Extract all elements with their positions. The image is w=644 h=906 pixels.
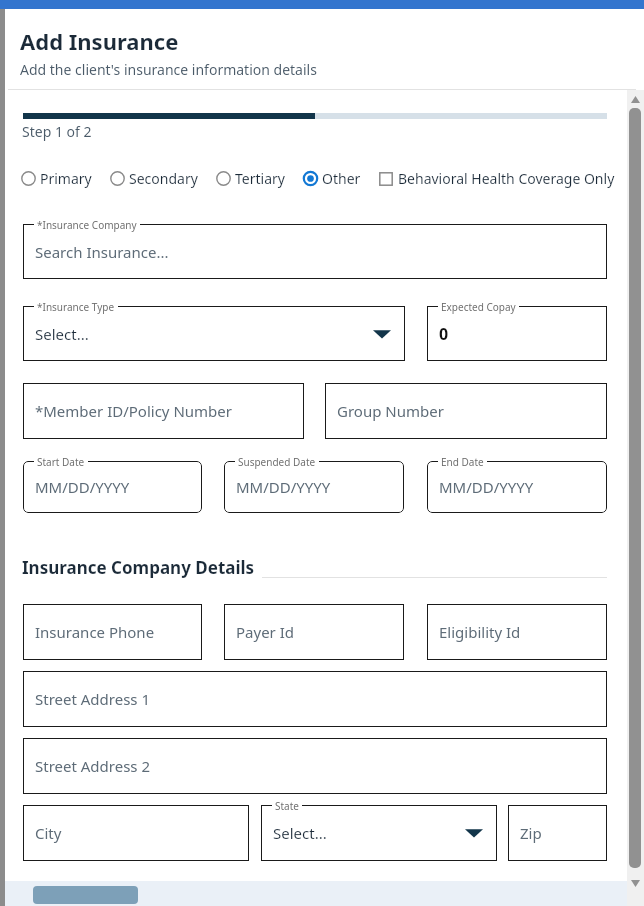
button[interactable] xyxy=(33,886,138,904)
staticText: Behavioral Health Coverage Only xyxy=(398,169,615,188)
staticText: Start Date xyxy=(37,455,85,469)
staticText: MM/DD/YYYY xyxy=(35,477,130,497)
button[interactable]: Tertiary xyxy=(216,169,285,188)
staticText: Search Insurance... xyxy=(35,242,169,262)
staticText: Insurance Phone xyxy=(35,622,155,642)
button[interactable]: Start Date xyxy=(23,461,202,513)
staticText: Tertiary xyxy=(235,169,285,188)
staticText: Expected Copay xyxy=(441,300,516,314)
staticText: *Insurance Company xyxy=(37,218,137,232)
button[interactable]: Insurance Phone xyxy=(23,604,202,660)
staticText: Group Number xyxy=(337,401,444,421)
staticText: Select... xyxy=(273,823,327,843)
button[interactable]: City xyxy=(23,805,249,861)
staticText: City xyxy=(35,823,62,843)
button[interactable]: Street Address 2 xyxy=(23,738,607,794)
button[interactable]: Street Address 1 xyxy=(23,671,607,727)
button[interactable]: Secondary xyxy=(110,169,198,188)
staticText: Zip xyxy=(520,823,542,843)
button[interactable]: Scroll down xyxy=(631,880,640,887)
button[interactable]: Behavioral Health Coverage Only xyxy=(379,169,615,188)
button[interactable]: Scroll up xyxy=(631,96,640,103)
staticText: MM/DD/YYYY xyxy=(236,477,331,497)
staticText: Add the client's insurance information d… xyxy=(20,60,317,79)
staticText: End Date xyxy=(441,455,484,469)
button[interactable]: Group Number xyxy=(325,383,607,439)
button[interactable]: Suspended Date xyxy=(224,461,404,513)
staticText: Street Address 1 xyxy=(35,689,151,709)
button[interactable]: Payer Id xyxy=(224,604,404,660)
staticText: 0 xyxy=(439,323,449,345)
staticText: *Member ID/Policy Number xyxy=(35,401,232,421)
staticText: Insurance Company Details xyxy=(22,556,255,579)
button[interactable]: Expected Copay xyxy=(427,306,607,361)
button[interactable]: Eligibility Id xyxy=(427,604,607,660)
button[interactable]: End Date xyxy=(427,461,607,513)
staticText: Other xyxy=(322,169,361,188)
button[interactable]: *Insurance Company xyxy=(23,224,607,279)
button[interactable]: *Member ID/Policy Number xyxy=(23,383,304,439)
staticText: Select... xyxy=(35,324,89,344)
staticText: Street Address 2 xyxy=(35,756,151,776)
staticText: Step 1 of 2 xyxy=(22,122,92,141)
staticText: Eligibility Id xyxy=(439,622,521,642)
staticText: State xyxy=(275,799,299,813)
staticText: Secondary xyxy=(129,169,198,188)
staticText: *Insurance Type xyxy=(37,300,115,314)
staticText: Add Insurance xyxy=(20,26,179,56)
button[interactable]: Other xyxy=(303,169,361,188)
staticText: MM/DD/YYYY xyxy=(439,477,534,497)
button[interactable]: Primary xyxy=(21,169,92,188)
staticText: Payer Id xyxy=(236,622,295,642)
button[interactable]: State xyxy=(261,805,497,861)
button[interactable]: *Insurance Type xyxy=(23,306,405,361)
staticText: Primary xyxy=(40,169,92,188)
button[interactable]: Zip xyxy=(508,805,607,861)
staticText: Suspended Date xyxy=(238,455,316,469)
